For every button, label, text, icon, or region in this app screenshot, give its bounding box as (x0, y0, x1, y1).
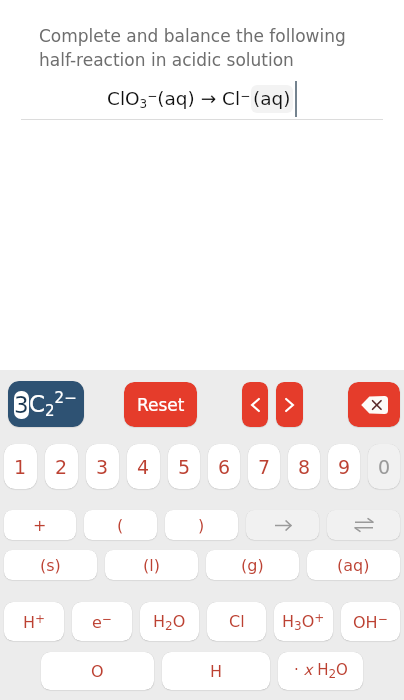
button[interactable]: H (162, 652, 270, 690)
staticText: H3O+ (282, 611, 325, 632)
button[interactable]: 7 (248, 444, 280, 489)
staticText: Reset (137, 395, 185, 415)
button[interactable]: Previous (242, 382, 268, 427)
button[interactable]: (s) (4, 550, 97, 580)
staticText: 0 (378, 456, 391, 478)
staticText: (s) (40, 556, 61, 575)
staticText: (aq) (253, 88, 291, 110)
staticText: Cl (229, 612, 245, 631)
staticText: ClO3−(aq) → Cl− (107, 88, 251, 111)
button[interactable]: 3 (86, 444, 119, 489)
staticText: 6 (218, 456, 231, 478)
button[interactable]: Cl (207, 602, 266, 641)
button[interactable]: 1 (4, 444, 37, 489)
button[interactable]: (l) (105, 550, 198, 580)
button[interactable]: H3O+ (274, 602, 333, 641)
button[interactable]: Equilibrium arrow (327, 510, 400, 540)
button[interactable]: 8 (288, 444, 320, 489)
staticText: 9 (338, 456, 351, 478)
staticText: 4 (137, 456, 150, 478)
button[interactable]: + (4, 510, 76, 540)
staticText: (g) (241, 556, 264, 575)
button[interactable]: Backspace (348, 382, 400, 427)
button[interactable]: · x H2O (278, 652, 363, 690)
staticText: 3 (14, 392, 29, 419)
button[interactable]: 4 (127, 444, 160, 489)
staticText: 2 (55, 456, 68, 478)
staticText: 7 (258, 456, 271, 478)
button[interactable]: H+ (4, 602, 64, 641)
button[interactable]: O (41, 652, 154, 690)
button[interactable]: (aq) (307, 550, 400, 580)
button[interactable]: e− (72, 602, 132, 641)
button[interactable]: (g) (206, 550, 299, 580)
staticText: C22− (29, 389, 77, 420)
staticText: ( (117, 516, 124, 535)
staticText: H2O (153, 612, 186, 632)
staticText: OH− (353, 612, 388, 632)
button[interactable]: Reset (124, 382, 197, 427)
staticText: 5 (178, 456, 191, 478)
button[interactable]: 9 (328, 444, 360, 489)
staticText: (aq) (337, 556, 370, 575)
button[interactable]: 0 (368, 444, 400, 489)
staticText: H (210, 662, 223, 681)
button[interactable]: ( (84, 510, 157, 540)
staticText: 8 (298, 456, 311, 478)
button[interactable]: 6 (208, 444, 240, 489)
staticText: e− (92, 612, 112, 632)
staticText: H+ (23, 612, 46, 632)
button[interactable]: 3 (8, 381, 84, 427)
button[interactable]: Next (276, 382, 303, 427)
button[interactable]: H2O (140, 602, 199, 641)
staticText: O (91, 662, 104, 681)
button[interactable]: ) (165, 510, 238, 540)
button[interactable]: 5 (168, 444, 200, 489)
staticText: + (33, 516, 47, 535)
staticText: 1 (14, 456, 27, 478)
staticText: ) (198, 516, 205, 535)
button[interactable]: 2 (45, 444, 78, 489)
staticText: Complete and balance the following half-… (39, 26, 346, 70)
staticText: 3 (96, 456, 109, 478)
staticText: · x H2O (294, 661, 348, 681)
button[interactable]: OH− (341, 602, 400, 641)
staticText: (l) (143, 556, 160, 575)
button[interactable]: Yields arrow (246, 510, 319, 540)
